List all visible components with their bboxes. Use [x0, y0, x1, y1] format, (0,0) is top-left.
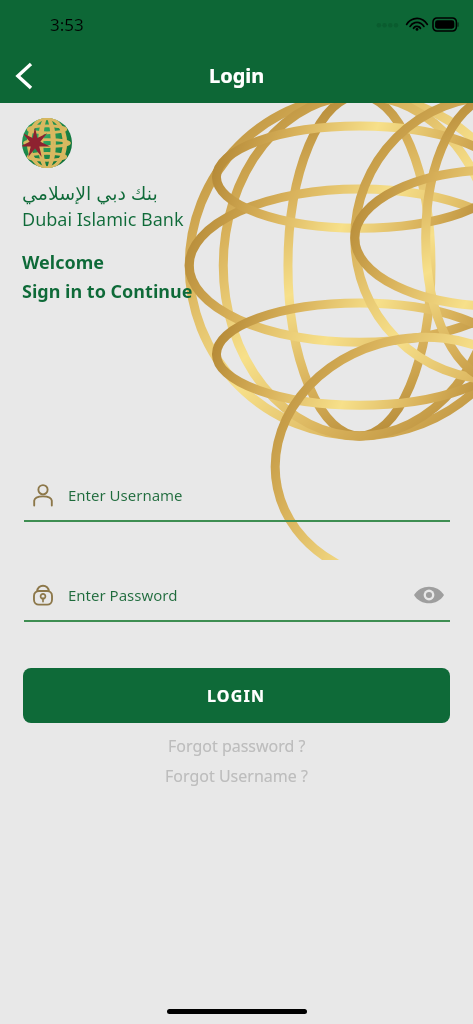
staticText: Forgot Username ?	[165, 765, 308, 787]
staticText: Enter Username	[68, 485, 183, 505]
button[interactable]: Forgot password ?	[23, 731, 450, 761]
staticText: Welcome	[22, 250, 104, 275]
button[interactable]: LOGIN	[23, 668, 450, 723]
staticText: LOGIN	[207, 685, 266, 707]
staticText: 3:53	[50, 13, 84, 36]
staticText: Enter Password	[68, 585, 178, 605]
staticText: Dubai Islamic Bank	[22, 207, 184, 232]
button[interactable]: Enter Password	[23, 570, 450, 620]
button[interactable]: Show password	[408, 574, 450, 616]
staticText: Sign in to Continue	[22, 279, 193, 304]
button[interactable]: Enter Username	[23, 470, 450, 522]
button[interactable]: Back	[0, 52, 48, 100]
button[interactable]: Forgot Username ?	[23, 761, 450, 791]
staticText: Forgot password ?	[168, 735, 306, 757]
staticText: Login	[209, 62, 265, 89]
staticText: بنك دبي الإسلامي	[22, 180, 158, 206]
